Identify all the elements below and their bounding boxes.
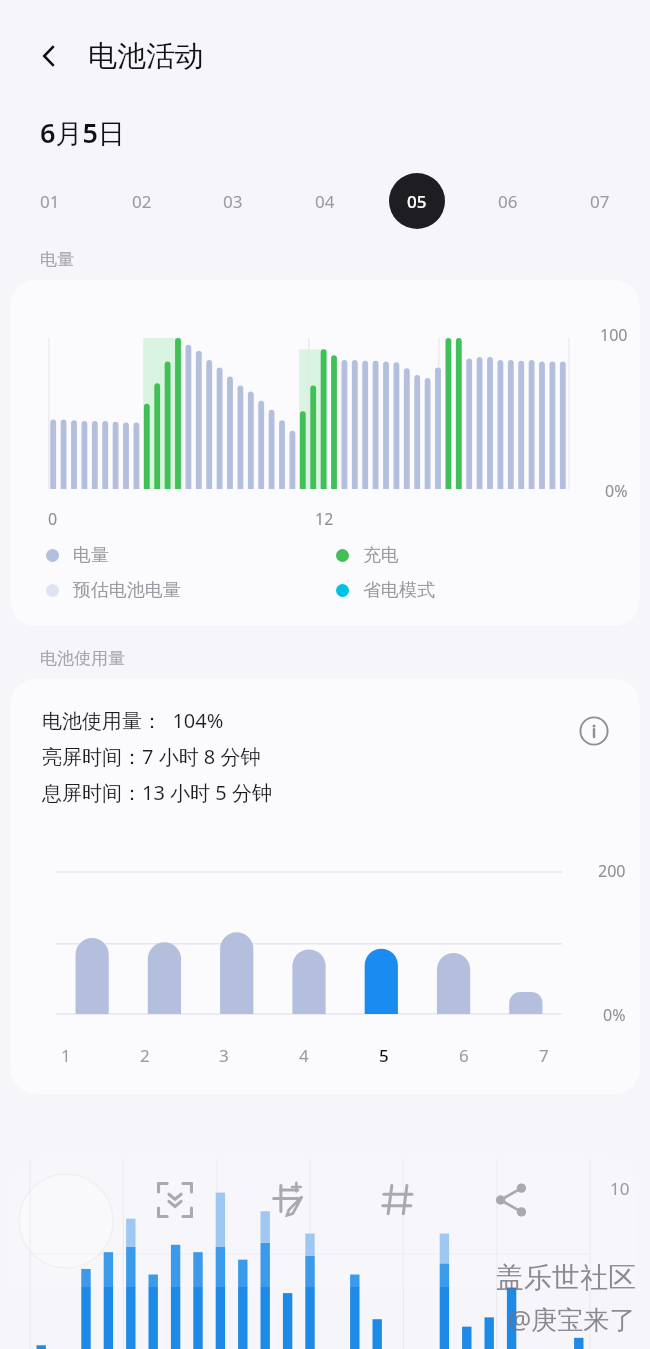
staticText: 6 [459,1044,469,1067]
button[interactable]: Back [26,33,72,79]
staticText: 3 [219,1044,229,1067]
staticText: 5 [379,1044,389,1067]
staticText: 电量 [40,249,74,270]
staticText: 电池活动 [88,38,204,75]
button[interactable]: 04 [297,173,353,229]
button[interactable]: 100 [10,280,640,626]
button[interactable]: Add tag [372,1173,426,1227]
staticText: 12 [315,508,334,530]
button[interactable]: Share [484,1173,538,1227]
staticText: 01 [40,190,60,213]
staticText: 电量 [73,544,109,567]
staticText: 0% [605,480,628,502]
staticText: 0% [603,1004,626,1026]
staticText: 0 [48,508,58,530]
staticText: 6月5日 [40,114,125,151]
staticText: 200 [598,860,626,882]
button[interactable]: 03 [205,173,261,229]
button[interactable]: 电池使用量： 104% [10,679,640,1094]
staticText: 02 [132,190,152,213]
button[interactable]: 06 [480,173,536,229]
staticText: 03 [223,190,243,213]
staticText: 亮屏时间：7 小时 8 分钟 [42,743,261,770]
staticText: 息屏时间：13 小时 5 分钟 [42,779,272,806]
staticText: 省电模式 [363,579,435,602]
staticText: 4 [299,1044,309,1067]
button[interactable]: 07 [572,173,628,229]
staticText: 1 [61,1044,71,1067]
button[interactable]: Crop and edit [260,1173,314,1227]
button[interactable]: 02 [114,173,170,229]
staticText: 7 [539,1044,549,1067]
staticText: 100 [600,324,628,346]
staticText: 06 [498,190,518,213]
button[interactable]: Screenshot preview [18,1173,114,1269]
staticText: 盖乐世社区 [496,1260,636,1295]
staticText: @庚宝来了 [508,1301,636,1337]
button[interactable]: 05 [389,173,445,229]
staticText: 2 [140,1044,150,1067]
staticText: 07 [590,190,610,213]
button[interactable]: Information [572,709,616,753]
staticText: 充电 [363,544,399,567]
staticText: 电池使用量： 104% [42,707,224,734]
staticText: 04 [315,190,335,213]
staticText: 预估电池电量 [73,579,181,602]
button[interactable]: Scroll capture [148,1173,202,1227]
staticText: 05 [407,190,427,213]
button[interactable]: 01 [22,173,78,229]
staticText: 10 [610,1177,630,1200]
staticText: 电池使用量 [40,648,125,669]
